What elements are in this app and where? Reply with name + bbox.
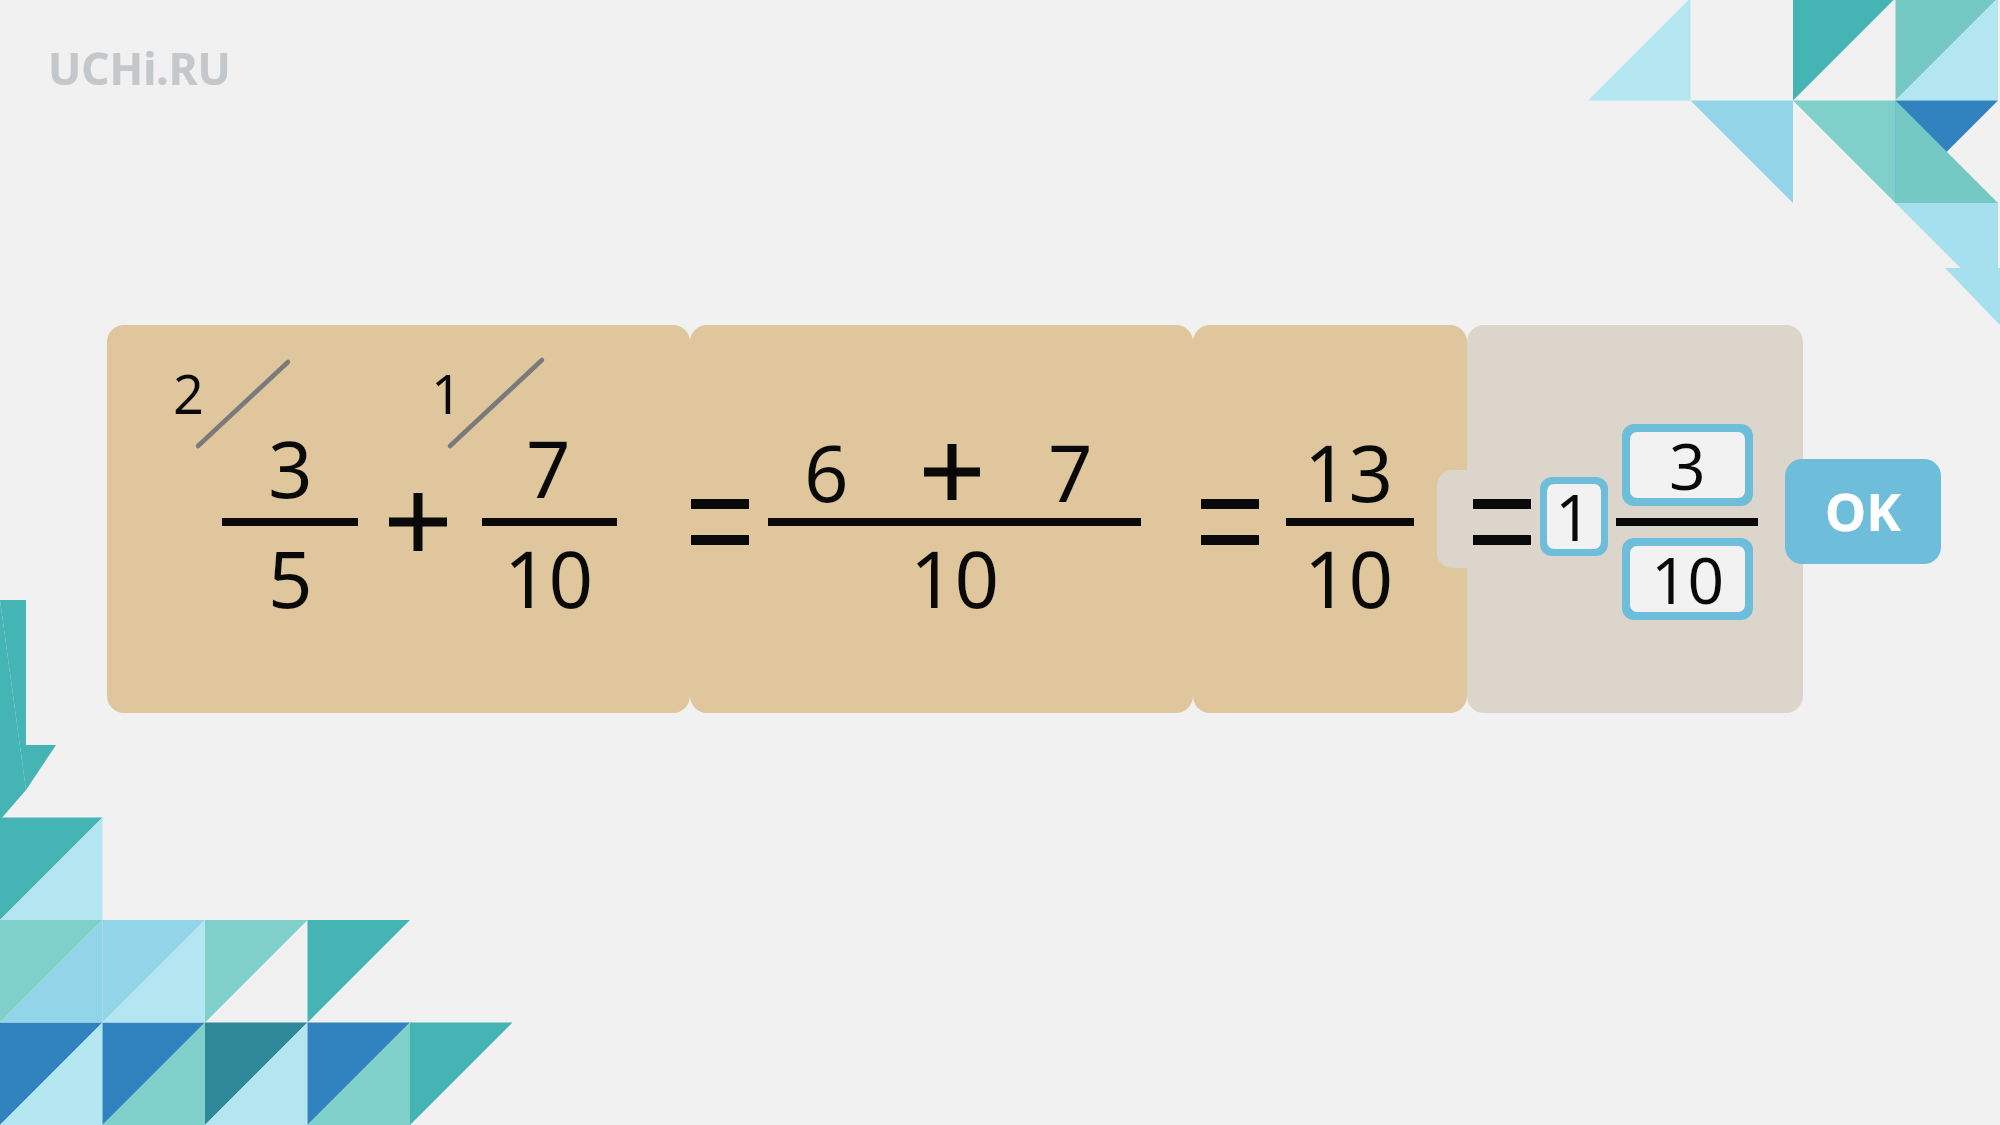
staticText: UCHi.RU — [48, 38, 231, 98]
staticText: 5 — [268, 525, 313, 631]
button[interactable]: Numerator input, 3 — [1622, 424, 1753, 506]
staticText: 7 — [1048, 419, 1093, 525]
staticText: 3 — [1669, 422, 1706, 509]
staticText: 10 — [910, 525, 1000, 631]
staticText: OK — [1825, 475, 1901, 546]
staticText: 13 — [1304, 419, 1394, 525]
staticText: 1 — [1555, 473, 1592, 560]
button[interactable]: OK, check answer — [1785, 459, 1941, 564]
staticText: 7 — [526, 415, 571, 521]
staticText: 10 — [1651, 536, 1725, 623]
staticText: 10 — [1304, 525, 1394, 631]
staticText: 6 — [804, 419, 849, 525]
button[interactable]: Whole number input, 1 — [1540, 477, 1608, 556]
staticText: 2 — [173, 356, 204, 430]
staticText: 3 — [268, 415, 313, 521]
button[interactable]: Denominator input, 10 — [1622, 538, 1753, 620]
staticText: 10 — [504, 525, 594, 631]
staticText: 1 — [431, 356, 462, 430]
